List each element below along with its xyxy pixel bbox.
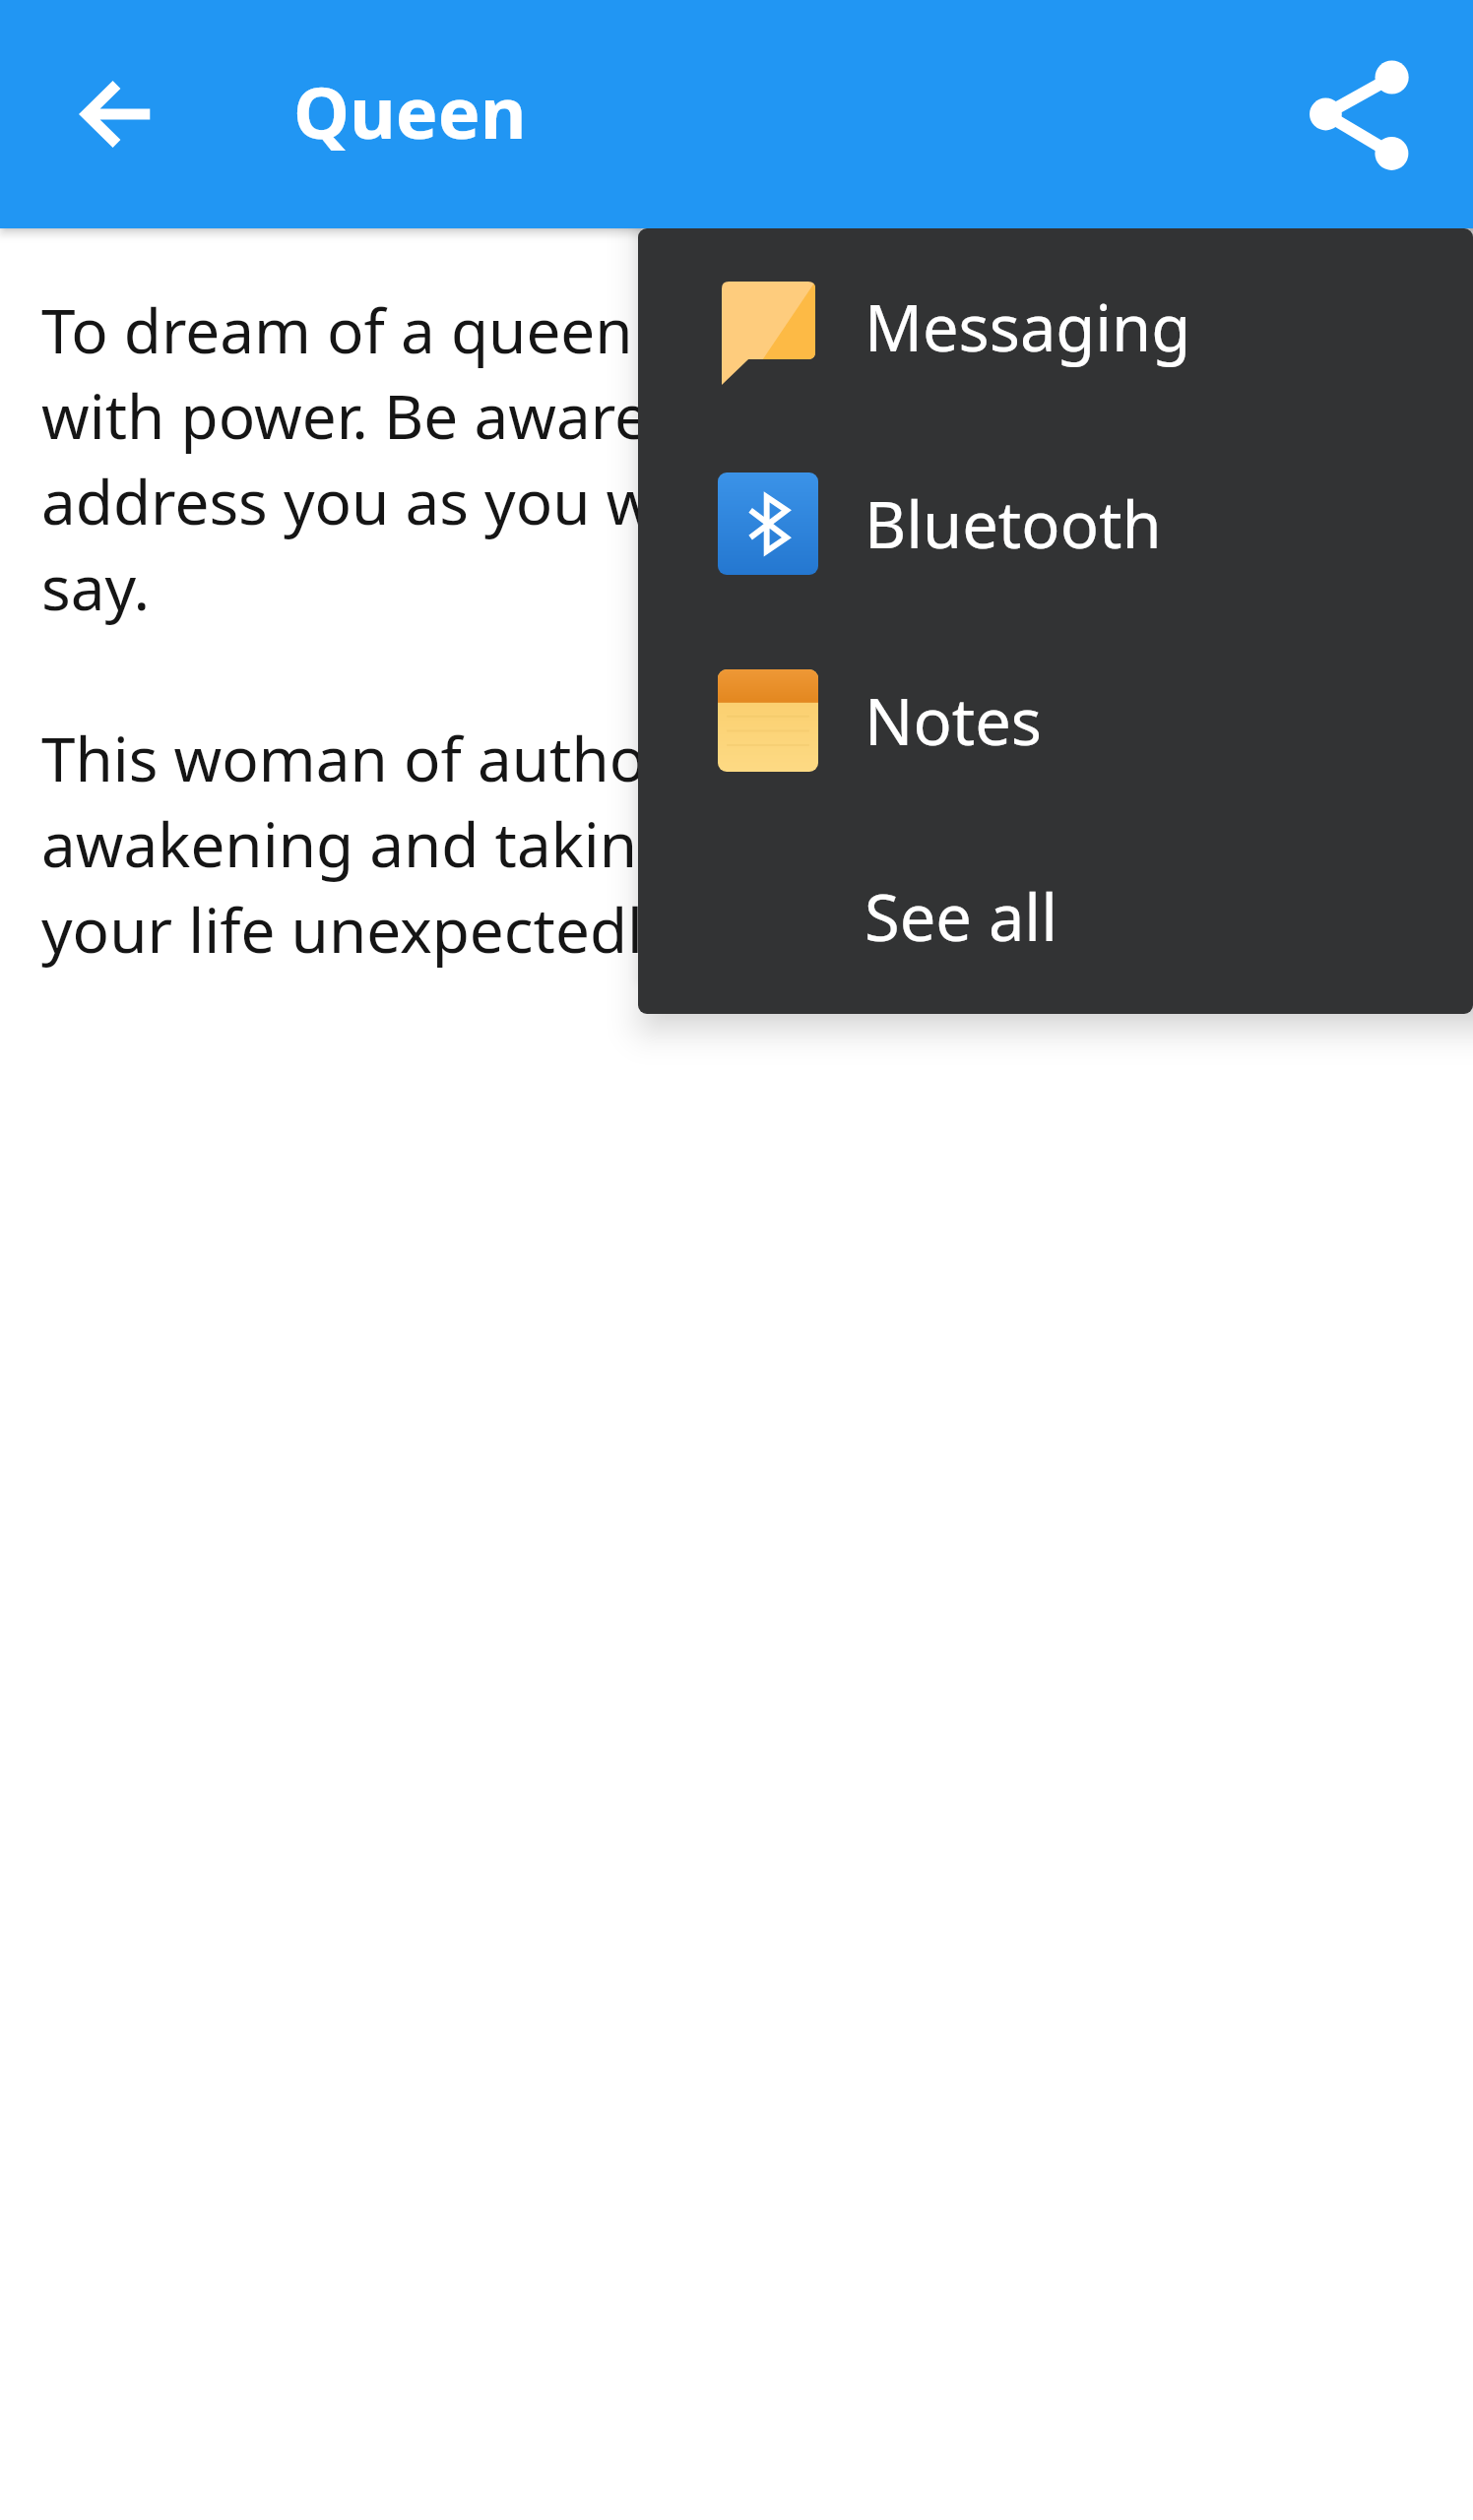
button[interactable]: Notes <box>638 622 1473 819</box>
staticText: Bluetooth <box>865 480 1162 568</box>
button[interactable]: Navigate up <box>57 55 175 173</box>
staticText: This woman of authority is a part of you… <box>41 717 1398 971</box>
staticText: Messaging <box>865 283 1191 371</box>
staticText: Queen <box>293 63 527 159</box>
button[interactable]: Share <box>1300 55 1418 173</box>
staticText: To dream of a queen signifies being asso… <box>41 288 1398 628</box>
staticText: Notes <box>865 677 1042 765</box>
button[interactable]: Messaging <box>638 228 1473 425</box>
button[interactable]: See all <box>638 819 1473 1014</box>
button[interactable]: Bluetooth <box>638 425 1473 622</box>
staticText: See all <box>865 873 1057 961</box>
